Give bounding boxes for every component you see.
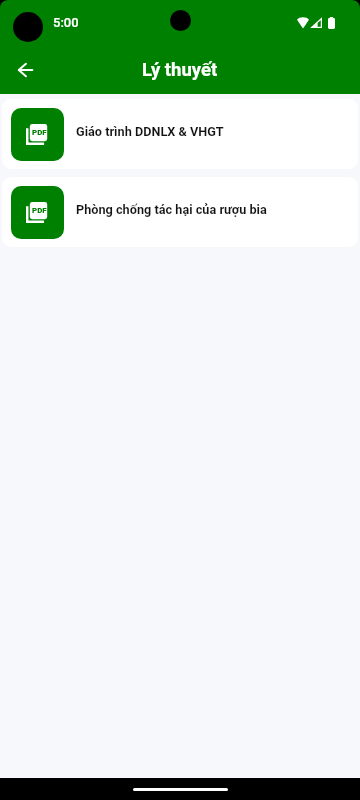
button[interactable]: PDF bbox=[2, 99, 358, 169]
staticText: PDF bbox=[32, 128, 47, 137]
staticText: Giáo trình DDNLX & VHGT bbox=[76, 124, 224, 139]
button[interactable]: Back bbox=[8, 53, 42, 87]
staticText: 5:00 bbox=[53, 15, 79, 30]
staticText: PDF bbox=[32, 206, 47, 215]
button[interactable]: PDF bbox=[2, 177, 358, 247]
staticText: Lý thuyết bbox=[142, 59, 218, 81]
staticText: Phòng chống tác hại của rượu bia bbox=[76, 202, 267, 217]
